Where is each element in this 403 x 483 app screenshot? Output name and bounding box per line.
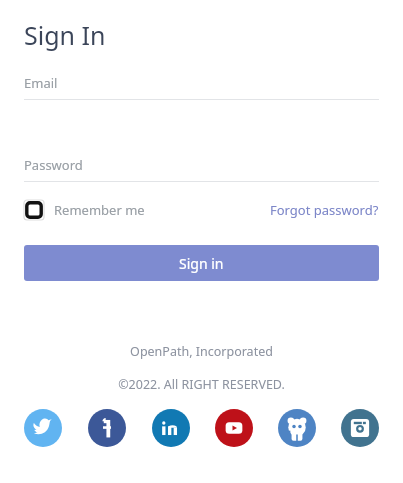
button[interactable]: Forgot password? — [270, 201, 379, 219]
staticText: Sign In — [24, 18, 106, 52]
button[interactable]: Facebook — [88, 409, 126, 447]
button[interactable]: Password — [24, 156, 379, 182]
staticText: OpenPath, Incorporated — [0, 343, 403, 360]
staticText: Sign in — [179, 254, 224, 273]
button[interactable]: GitHub — [278, 409, 316, 447]
staticText: Forgot password? — [270, 201, 379, 219]
staticText: Email — [24, 74, 58, 92]
button[interactable]: YouTube — [215, 409, 253, 447]
staticText: Remember me — [54, 201, 145, 219]
staticText: ©2022. All RIGHT RESERVED. — [0, 376, 403, 393]
button[interactable]: Twitter — [24, 409, 62, 447]
button[interactable]: LinkedIn — [152, 409, 190, 447]
button[interactable]: Instagram — [341, 409, 379, 447]
staticText: Password — [24, 156, 83, 174]
button[interactable]: Sign in — [24, 245, 379, 281]
button[interactable]: Remember me — [24, 200, 145, 220]
button[interactable]: Email — [24, 74, 379, 100]
